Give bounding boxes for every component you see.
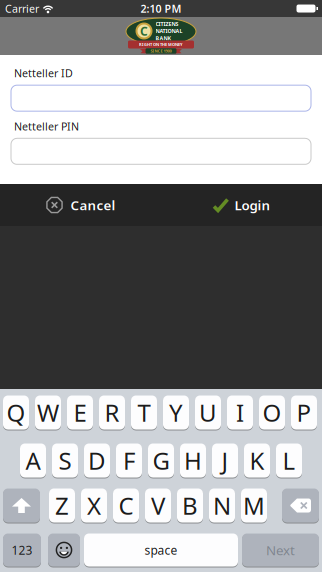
staticText: CITIZENS: [155, 20, 178, 27]
button[interactable]: P: [291, 395, 317, 430]
button[interactable]: Q: [3, 395, 29, 430]
staticText: Next: [266, 541, 295, 559]
button[interactable]: Numbers: [3, 533, 41, 567]
button[interactable]: S: [52, 443, 78, 478]
staticText: U: [199, 397, 217, 428]
button[interactable]: A: [20, 443, 46, 478]
staticText: Login: [234, 196, 270, 214]
staticText: M: [243, 490, 265, 521]
button[interactable]: U: [195, 395, 221, 430]
staticText: Netteller PIN: [14, 119, 79, 133]
button[interactable]: E: [67, 395, 93, 430]
staticText: E: [73, 397, 86, 428]
staticText: space: [144, 542, 177, 558]
staticText: B: [182, 490, 198, 521]
button[interactable]: N: [209, 488, 235, 523]
staticText: A: [25, 445, 40, 476]
button[interactable]: Emoji: [48, 533, 80, 567]
staticText: RIGHT ON THE MONEY: [139, 42, 183, 47]
staticText: 2:10 PM: [140, 1, 181, 16]
staticText: J: [221, 445, 228, 476]
button[interactable]: M: [241, 488, 267, 523]
staticText: W: [37, 397, 59, 428]
staticText: L: [282, 445, 295, 476]
staticText: Carrier: [5, 1, 39, 16]
button[interactable]: J: [212, 443, 238, 478]
staticText: I: [236, 397, 244, 428]
button[interactable]: Login: [161, 184, 322, 226]
button[interactable]: O: [259, 395, 285, 430]
button[interactable]: R: [99, 395, 125, 430]
staticText: X: [87, 490, 101, 521]
staticText: Cancel: [70, 196, 115, 214]
staticText: 123: [11, 542, 32, 558]
staticText: C: [118, 490, 133, 521]
button[interactable]: G: [148, 443, 174, 478]
staticText: SINCE 1900: [150, 48, 171, 54]
staticText: G: [152, 445, 169, 476]
staticText: Y: [169, 397, 183, 428]
staticText: C: [140, 23, 148, 39]
staticText: T: [137, 397, 150, 428]
staticText: F: [123, 445, 135, 476]
staticText: O: [262, 397, 281, 428]
staticText: N: [213, 490, 231, 521]
staticText: R: [104, 397, 119, 428]
staticText: K: [249, 445, 264, 476]
staticText: S: [58, 445, 71, 476]
button[interactable]: Netteller ID: [11, 85, 311, 111]
button[interactable]: I: [227, 395, 253, 430]
button[interactable]: Y: [163, 395, 189, 430]
button[interactable]: X: [81, 488, 107, 523]
button[interactable]: B: [177, 488, 203, 523]
button[interactable]: Netteller PIN: [11, 138, 311, 164]
button[interactable]: D: [84, 443, 110, 478]
button[interactable]: C: [113, 488, 139, 523]
staticText: NATIONAL: [155, 27, 182, 35]
button[interactable]: Delete: [282, 488, 319, 523]
staticText: Z: [55, 490, 69, 521]
staticText: Q: [6, 397, 25, 428]
button[interactable]: L: [276, 443, 302, 478]
staticText: Netteller ID: [14, 66, 73, 80]
button[interactable]: V: [145, 488, 171, 523]
button[interactable]: Shift: [3, 488, 40, 523]
button[interactable]: K: [244, 443, 270, 478]
button[interactable]: Next: [242, 533, 319, 567]
button[interactable]: T: [131, 395, 157, 430]
button[interactable]: space: [84, 533, 238, 567]
button[interactable]: W: [35, 395, 61, 430]
staticText: P: [296, 397, 311, 428]
button[interactable]: F: [116, 443, 142, 478]
button[interactable]: Z: [49, 488, 75, 523]
staticText: BANK: [155, 34, 171, 42]
staticText: V: [151, 490, 165, 521]
staticText: D: [88, 445, 106, 476]
button[interactable]: Cancel: [0, 184, 161, 226]
staticText: H: [184, 445, 202, 476]
button[interactable]: H: [180, 443, 206, 478]
